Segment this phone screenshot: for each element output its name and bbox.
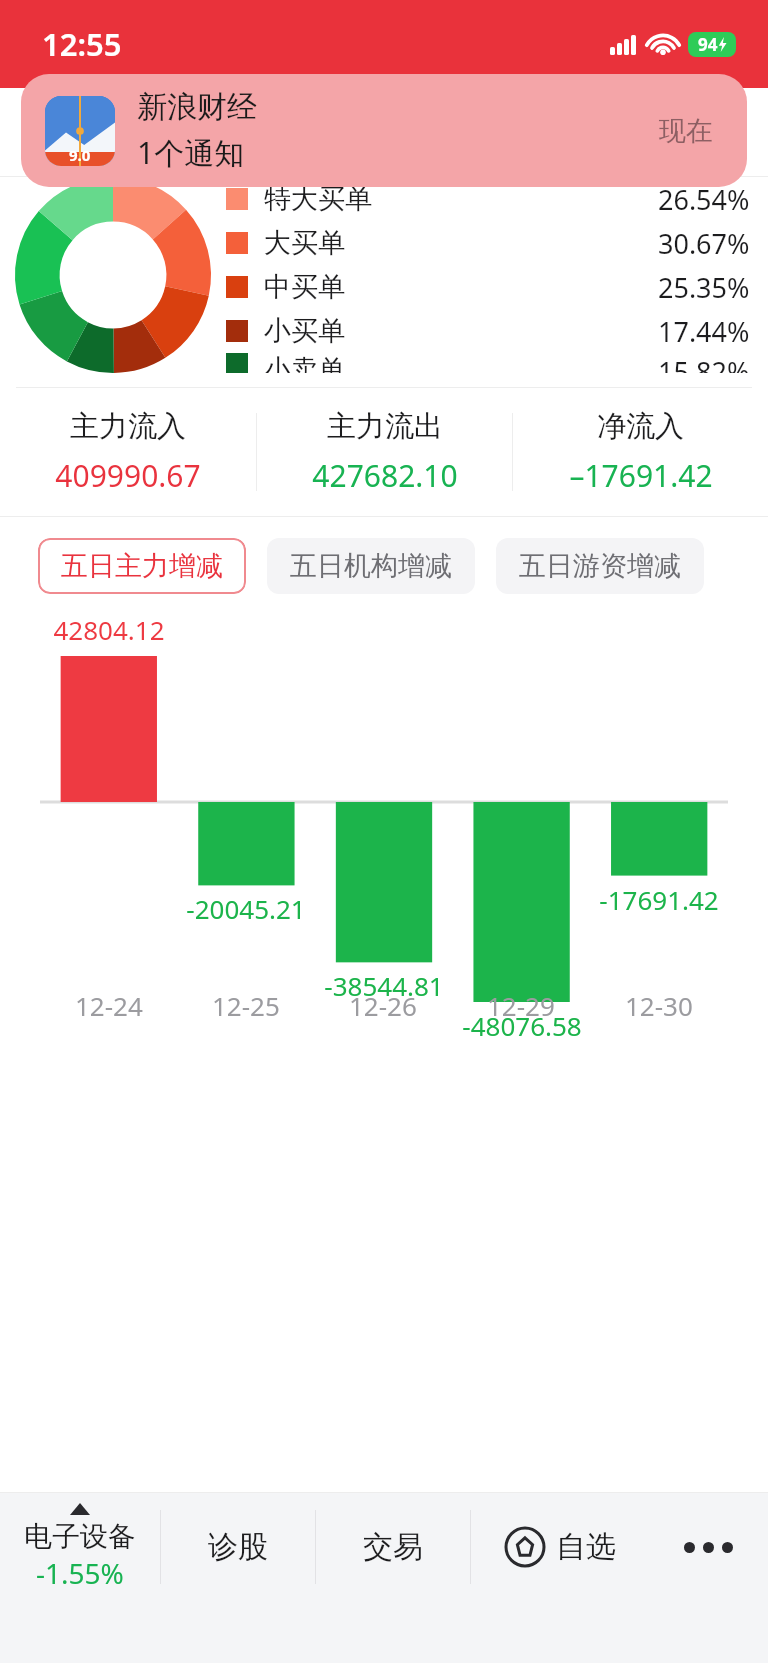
staticText: 12-24 [75, 988, 143, 1023]
button[interactable]: 诊股 [161, 1493, 315, 1601]
staticText: 427682.10 [312, 455, 458, 496]
staticText: 94 [698, 33, 718, 56]
button[interactable]: 中买单 [226, 265, 750, 309]
staticText: 精选 [35, 107, 93, 144]
staticText: 12:55 [42, 23, 122, 65]
button[interactable]: 电子设备 [0, 1493, 160, 1601]
staticText: 五日游资增减 [519, 549, 681, 583]
staticText: 电子设备 [24, 1519, 136, 1554]
staticText: -1.55% [36, 1554, 124, 1592]
staticText: 小买单 [264, 314, 345, 348]
staticText: 17.44% [658, 313, 750, 350]
staticText: 特大买单 [264, 182, 372, 216]
staticText: 新浪财经 [137, 88, 257, 126]
button[interactable]: 新闻 [128, 88, 256, 176]
button[interactable]: 小买单 [226, 309, 750, 353]
button[interactable]: 自选 [471, 1493, 648, 1601]
button[interactable]: 特大买单 [226, 177, 750, 221]
staticText: 15.82% [658, 353, 750, 373]
button[interactable]: 五日游资增减 [496, 538, 704, 594]
staticText: 30.67% [658, 225, 750, 262]
staticText: 交易 [363, 1528, 423, 1566]
button[interactable]: 五日主力增减 [38, 538, 246, 594]
button[interactable]: 精选 [0, 88, 128, 176]
staticText: 12-30 [625, 988, 693, 1023]
staticText: 大买单 [264, 226, 345, 260]
staticText: 9.0 [69, 145, 91, 165]
staticText: 自选 [556, 1528, 616, 1566]
staticText: 小卖单 [264, 353, 345, 373]
staticText: -48076.58 [462, 1008, 582, 1043]
staticText: 五日主力增减 [61, 549, 223, 583]
staticText: 12-29 [487, 988, 555, 1023]
button[interactable]: 小卖单 [226, 353, 750, 373]
button[interactable]: 净流入 [513, 388, 768, 516]
staticText: 1个通知 [137, 132, 245, 173]
button[interactable]: 交易 [316, 1493, 470, 1601]
staticText: -38544.81 [324, 968, 444, 1003]
staticText: 新闻 [163, 107, 221, 144]
staticText: -20045.21 [186, 891, 306, 926]
staticText: 12-25 [212, 988, 280, 1023]
staticText: 12-26 [349, 988, 417, 1023]
staticText: 409990.67 [55, 455, 201, 496]
staticText: 主力流入 [70, 408, 186, 445]
staticText: 25.35% [658, 269, 750, 306]
button[interactable]: More options [648, 1493, 768, 1601]
staticText: 净流入 [597, 408, 684, 445]
staticText: -17691.42 [599, 882, 719, 917]
staticText: –17691.42 [569, 455, 713, 496]
staticText: 42804.12 [53, 612, 165, 647]
button[interactable]: 大买单 [226, 221, 750, 265]
staticText: 诊股 [208, 1528, 268, 1566]
staticText: 中买单 [264, 270, 345, 304]
staticText: 五日机构增减 [290, 549, 452, 583]
button[interactable]: 主力流入 [0, 388, 256, 516]
staticText: 主力流出 [327, 408, 443, 445]
staticText: 现在 [659, 114, 713, 148]
staticText: 研究 [675, 107, 733, 144]
button[interactable]: 研究 [640, 88, 768, 176]
button[interactable]: 主力流出 [257, 388, 512, 516]
button[interactable]: 五日机构增减 [267, 538, 475, 594]
staticText: 26.54% [658, 181, 750, 218]
button[interactable]: 9.0 [21, 74, 747, 187]
